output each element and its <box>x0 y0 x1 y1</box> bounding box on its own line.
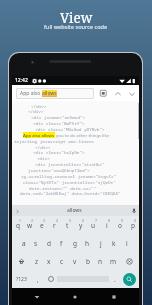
staticText: x <box>47 257 51 266</box>
staticText: 6 <box>82 218 85 223</box>
button[interactable]: 4 <box>48 216 61 234</box>
staticText: </div> <box>35 144 51 150</box>
staticText: d <box>47 239 51 248</box>
staticText: 5 <box>69 218 72 223</box>
button[interactable]: g <box>68 234 81 252</box>
button[interactable]: v <box>68 252 81 270</box>
staticText: a <box>22 239 26 248</box>
staticText: </div> <box>31 103 47 109</box>
button[interactable]: Shift <box>12 252 31 270</box>
staticText: t <box>66 221 69 230</box>
button[interactable]: x <box>43 252 55 270</box>
button[interactable]: l <box>120 234 133 252</box>
staticText: full website source code <box>44 23 108 31</box>
staticText: c <box>60 257 64 266</box>
staticText: j <box>100 239 102 248</box>
button[interactable]: s <box>30 234 42 252</box>
staticText: 12:42 <box>15 77 28 84</box>
staticText: 0 <box>134 218 137 223</box>
staticText: App also <box>20 90 42 97</box>
staticText: you to do other things like <box>55 132 110 138</box>
button[interactable]: b <box>81 252 94 270</box>
button[interactable]: App also <box>20 88 94 99</box>
staticText: <div class="BmP5tf"> <box>33 120 85 126</box>
button[interactable]: Previous result <box>112 88 123 99</box>
staticText: y <box>79 221 83 230</box>
staticText: , <box>37 275 39 284</box>
button[interactable]: 8 <box>100 216 113 234</box>
staticText: i <box>106 221 108 230</box>
staticText: =g-scrolling-carousel jsname="kvgvCc" <box>21 173 117 179</box>
staticText: App also allows <box>23 132 55 138</box>
staticText: l <box>126 239 128 248</box>
staticText: o <box>118 221 122 230</box>
button[interactable]: Search <box>123 273 136 286</box>
button[interactable]: Home <box>68 290 82 304</box>
staticText: <div class="MUxGod yDYNvb"> <box>35 126 105 132</box>
button[interactable]: k <box>107 234 120 252</box>
staticText: h <box>85 239 90 248</box>
staticText: 4 <box>56 218 59 223</box>
staticText: n <box>98 257 103 266</box>
staticText: 2 <box>31 218 34 223</box>
staticText: 1 <box>19 218 22 223</box>
staticText: allows <box>67 207 82 214</box>
staticText: w <box>27 221 33 230</box>
button[interactable]: d <box>42 234 55 252</box>
staticText: u <box>91 221 96 230</box>
button[interactable]: 1 <box>12 216 24 234</box>
staticText: k <box>112 239 116 248</box>
button[interactable]: f <box>55 234 68 252</box>
staticText: f <box>60 239 63 248</box>
button[interactable]: a <box>18 234 30 252</box>
button[interactable]: More suggestions <box>14 208 20 214</box>
button[interactable]: 3 <box>36 216 48 234</box>
staticText: View <box>60 9 93 27</box>
button[interactable]: 0 <box>126 216 139 234</box>
button[interactable]: ?123 <box>12 270 31 288</box>
staticText: . <box>114 275 116 284</box>
staticText: 3 <box>43 218 46 223</box>
button[interactable]: n <box>94 252 107 270</box>
button[interactable]: 5 <box>61 216 74 234</box>
button[interactable]: allows <box>64 207 85 214</box>
staticText: injecting javascript one-liners <box>14 138 94 144</box>
staticText: jsaction="rouQ6bnpT2md"> <box>28 167 90 173</box>
button[interactable]: Backspace <box>120 252 139 270</box>
staticText: <div> <box>37 155 50 161</box>
staticText: class="NyXVTe" jscontroller="xjQeUc" <box>23 179 116 185</box>
staticText: ?123 <box>16 276 27 283</box>
button[interactable]: 6 <box>74 216 87 234</box>
staticText: z <box>35 257 39 266</box>
staticText: v <box>73 257 77 266</box>
staticText: <div jsname="ao5mud"> <box>31 114 86 120</box>
staticText: data-ved="2ahUKEwj" data-hveid="CBEQAA" <box>20 190 121 196</box>
button[interactable]: 7 <box>87 216 100 234</box>
button[interactable]: , <box>31 270 44 288</box>
staticText: 8 <box>108 218 111 223</box>
button[interactable]: Back <box>30 290 44 304</box>
button[interactable]: 9 <box>113 216 126 234</box>
staticText: p <box>131 221 135 230</box>
button[interactable]: Emoji <box>44 270 57 288</box>
button[interactable]: c <box>55 252 68 270</box>
button[interactable]: Tabs <box>98 88 109 99</box>
button[interactable]: h <box>81 234 94 252</box>
staticText: s <box>34 239 38 248</box>
button[interactable]: z <box>31 252 43 270</box>
button[interactable]: Recent apps <box>107 290 121 304</box>
staticText: </div> <box>28 108 44 114</box>
button[interactable]: m <box>107 252 120 270</box>
button[interactable]: 2 <box>24 216 36 234</box>
button[interactable]: j <box>94 234 107 252</box>
staticText: <div class="hs2p9e"> <box>33 149 85 155</box>
button[interactable]: Next result <box>126 88 137 99</box>
button[interactable]: . <box>109 270 120 288</box>
staticText: allows <box>42 90 57 97</box>
staticText: g <box>73 239 77 248</box>
staticText: 7 <box>95 218 98 223</box>
staticText: q <box>16 221 20 230</box>
staticText: r <box>53 221 56 230</box>
button[interactable]: Voice input <box>130 207 137 214</box>
